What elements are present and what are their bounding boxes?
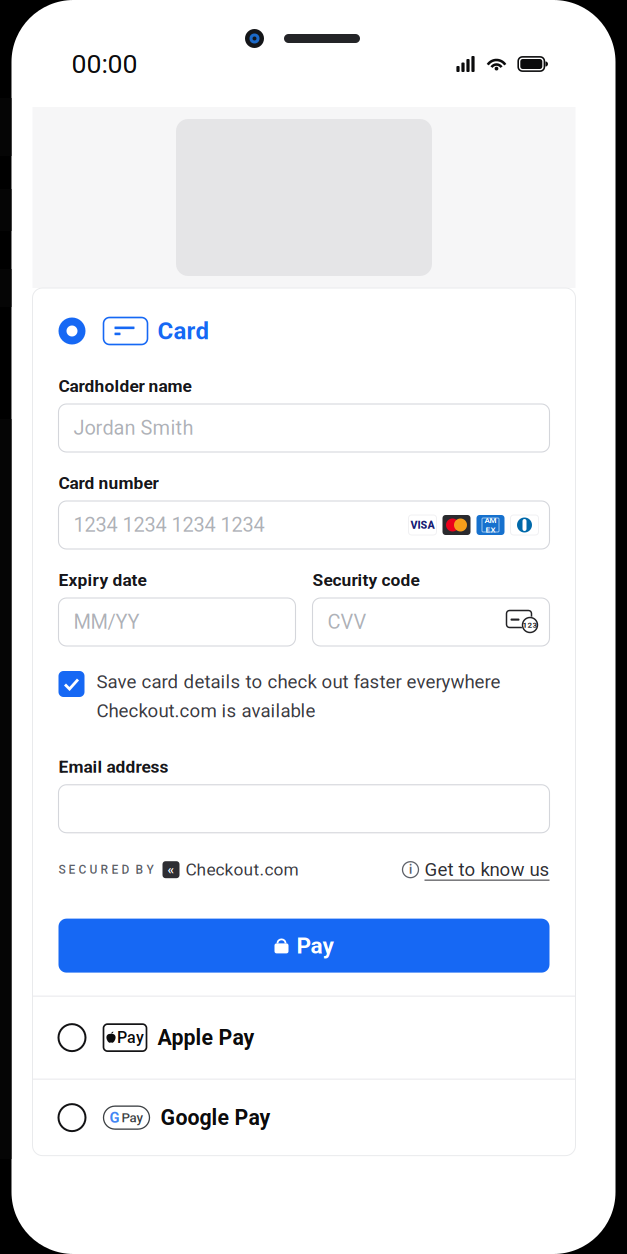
staticText: Apple Pay [157,1025,254,1050]
staticText: Pay [296,932,333,959]
button[interactable]: CVV [312,598,549,646]
staticText: Google Pay [160,1105,270,1130]
button[interactable]: 1234 1234 1234 1234 [58,501,549,549]
staticText: Card number [58,473,158,493]
staticText: i [409,863,412,877]
button[interactable]: i [402,859,549,881]
staticText: Cardholder name [58,376,191,396]
staticText: Pay [117,1028,144,1047]
staticText: S E C U R E D B Y [58,863,153,877]
staticText: 1234 1234 1234 1234 [73,513,264,537]
staticText: Checkout.com is available [96,700,315,722]
staticText: Card [157,317,209,345]
staticText: Email address [58,757,168,777]
button[interactable]: Pay [32,997,575,1079]
button[interactable]: G [32,1080,575,1156]
staticText: Jordan Smith [73,416,193,440]
staticText: Checkout.com [185,859,298,880]
staticText: 00:00 [71,48,137,80]
button[interactable]: Save card details to check out faster ev… [58,671,549,722]
button[interactable]: Pay [58,919,549,973]
staticText: Expiry date [58,570,146,590]
staticText: AM [484,516,496,525]
button[interactable]: Jordan Smith [58,404,549,452]
staticText: G [109,1109,119,1126]
staticText: « [167,862,174,877]
staticText: MM/YY [73,610,139,634]
button[interactable] [58,785,549,833]
button[interactable]: Card [58,316,549,346]
staticText: Security code [312,570,419,590]
staticText: Get to know us [424,859,549,881]
button[interactable]: MM/YY [58,598,295,646]
staticText: 123 [522,620,537,630]
staticText: Pay [121,1110,143,1125]
staticText: VISA [410,519,434,531]
staticText: CVV [327,610,366,634]
staticText: Save card details to check out faster ev… [96,671,500,693]
staticText: EX [485,525,495,534]
